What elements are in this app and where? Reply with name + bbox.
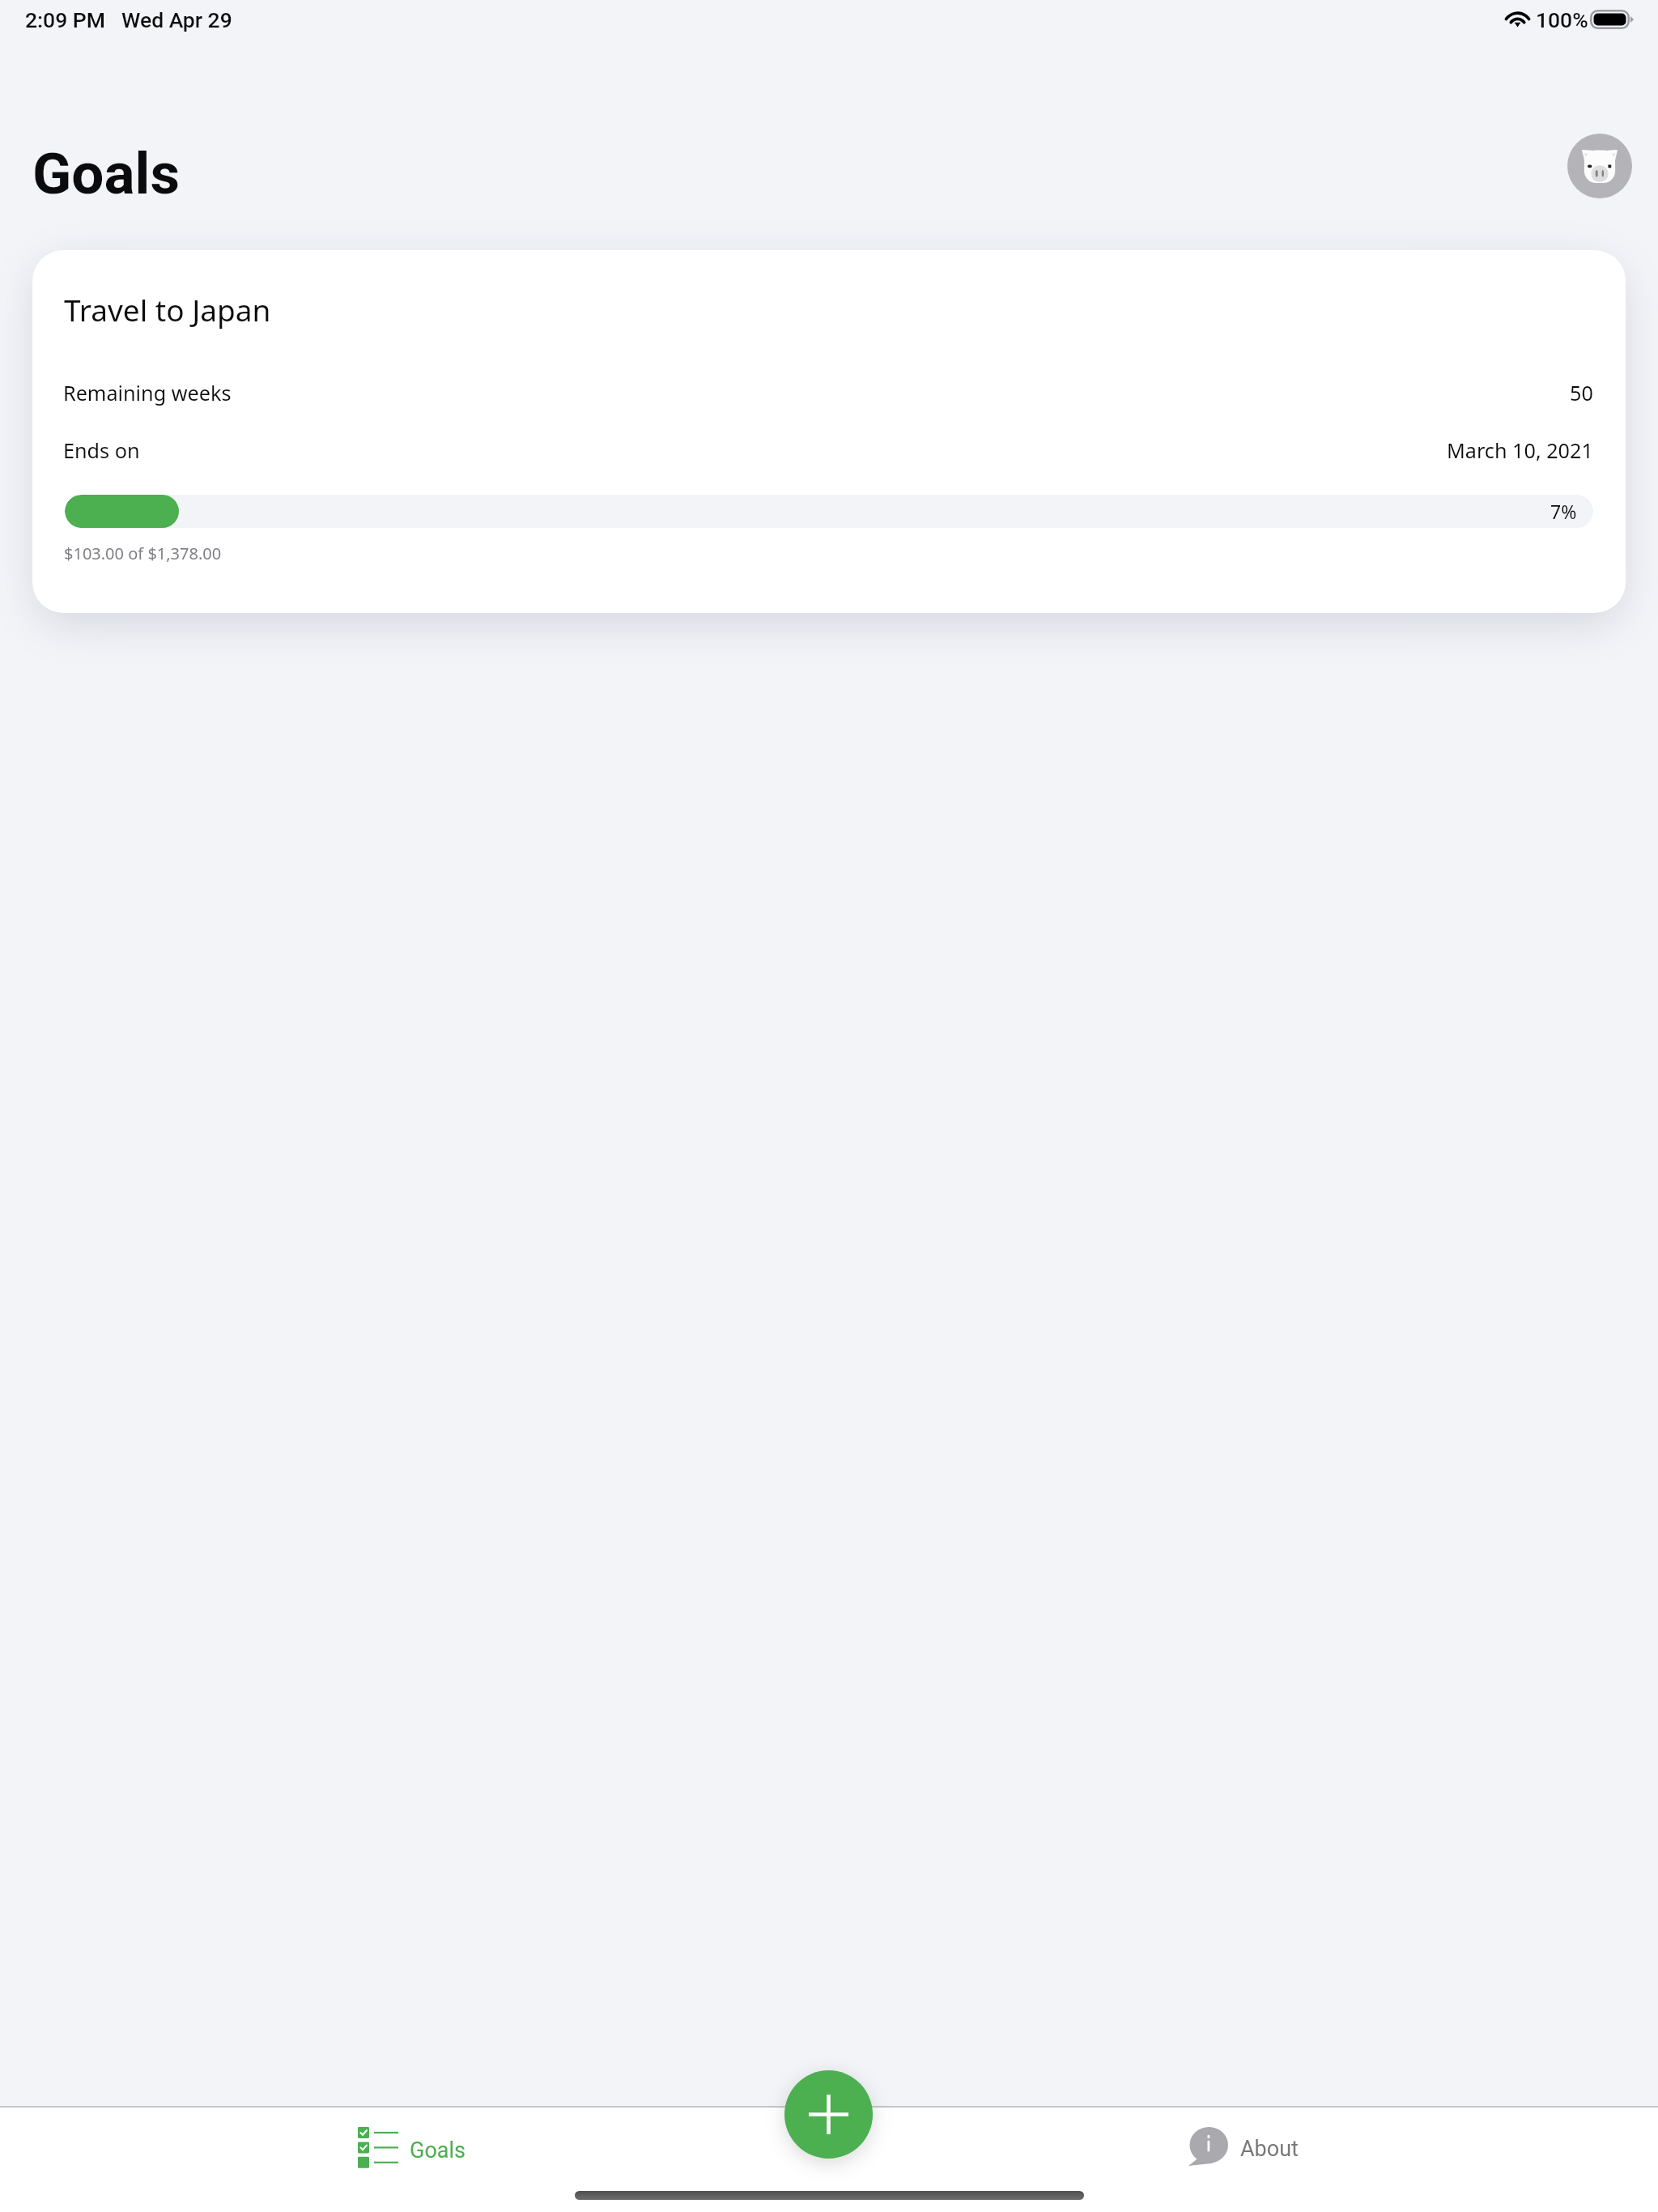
button[interactable]: Add goal xyxy=(784,2070,873,2159)
staticText: Travel to Japan xyxy=(64,289,271,330)
staticText: Goals xyxy=(32,140,180,207)
staticText: 2:09 PM xyxy=(25,7,105,32)
staticText: 100% xyxy=(1536,7,1588,32)
staticText: March 10, 2021 xyxy=(1447,436,1593,464)
staticText: Ends on xyxy=(63,436,140,464)
button[interactable]: Goals xyxy=(350,2122,474,2172)
staticText: About xyxy=(1240,2136,1299,2162)
staticText: Remaining weeks xyxy=(63,379,232,406)
staticText: 7% xyxy=(1550,499,1577,524)
button[interactable]: Profile xyxy=(1567,134,1632,198)
button[interactable]: About xyxy=(1180,2122,1307,2171)
staticText: Goals xyxy=(410,2138,466,2163)
button[interactable]: Travel to Japan xyxy=(32,250,1626,613)
staticText: Wed Apr 29 xyxy=(121,7,232,32)
staticText: $103.00 of $1,378.00 xyxy=(64,542,222,564)
staticText: 50 xyxy=(1570,379,1593,406)
